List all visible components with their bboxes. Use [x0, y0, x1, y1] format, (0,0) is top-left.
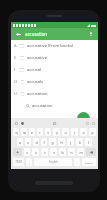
button[interactable]: A — [11, 40, 98, 52]
staticText: h — [60, 140, 63, 145]
staticText: t — [47, 130, 49, 135]
button[interactable]: Settings — [13, 120, 19, 126]
button[interactable]: u — [62, 128, 69, 136]
staticText: i — [74, 130, 75, 135]
button[interactable]: I — [11, 64, 98, 76]
button[interactable]: v — [50, 148, 57, 156]
button[interactable]: Add word — [77, 112, 90, 125]
staticText: s — [27, 140, 29, 145]
staticText: u — [64, 130, 67, 135]
button[interactable]: s — [25, 138, 31, 146]
button[interactable]: q — [13, 128, 19, 136]
button[interactable]: Backspace — [86, 148, 96, 156]
button[interactable]: . — [74, 158, 80, 166]
button[interactable]: Emoji — [51, 120, 57, 126]
staticText: n — [70, 150, 73, 155]
button[interactable]: Clipboard — [84, 120, 90, 126]
button[interactable]: r — [37, 128, 43, 136]
staticText: accusal — [27, 67, 42, 73]
staticText: b — [61, 150, 64, 155]
button[interactable]: Back — [13, 29, 23, 39]
button[interactable]: m — [77, 148, 84, 156]
staticText: m — [79, 150, 83, 155]
button[interactable]: More options — [90, 120, 96, 126]
button[interactable]: E — [11, 52, 98, 64]
button[interactable]: accusation — [24, 88, 98, 100]
staticText: w — [23, 130, 26, 135]
button[interactable]: Shift — [13, 148, 22, 156]
button[interactable]: , — [26, 158, 32, 166]
button[interactable]: t — [45, 128, 51, 136]
button[interactable]: Voice search — [86, 29, 96, 39]
staticText: y — [56, 130, 58, 135]
staticText: o — [82, 130, 85, 135]
staticText: a — [19, 140, 21, 145]
button[interactable]: accusation — [24, 100, 98, 112]
staticText: r — [39, 130, 41, 135]
button[interactable]: g — [49, 138, 56, 146]
staticText: accusative — [27, 55, 47, 61]
staticText: c — [44, 150, 46, 155]
button[interactable]: Stickers — [19, 120, 25, 126]
staticText: l — [88, 140, 89, 145]
staticText: accusation — [27, 91, 48, 97]
staticText: j — [70, 140, 71, 145]
button[interactable]: accusative (From books) — [24, 40, 98, 52]
staticText: . — [77, 160, 78, 165]
staticText: I — [14, 67, 16, 73]
button[interactable]: x — [32, 148, 39, 156]
staticText: g — [51, 140, 54, 145]
staticText: , — [29, 160, 30, 165]
staticText: U — [14, 91, 18, 97]
staticText: accusation — [32, 103, 53, 109]
button[interactable]: p — [89, 128, 96, 136]
staticText: z — [26, 150, 28, 155]
button[interactable]: ?123 — [13, 158, 24, 166]
staticText: O — [14, 79, 18, 85]
button[interactable]: O — [11, 76, 98, 88]
staticText: x — [35, 150, 37, 155]
button[interactable]: b — [59, 148, 66, 156]
button[interactable]: c — [41, 148, 48, 156]
button[interactable]: accusal — [24, 64, 98, 76]
button[interactable]: accusation — [25, 28, 86, 40]
staticText: English — [49, 160, 58, 164]
staticText: Search — [85, 161, 93, 164]
button[interactable]: z — [24, 148, 30, 156]
button[interactable]: y — [53, 128, 60, 136]
staticText: e — [31, 130, 33, 135]
button[interactable]: l — [85, 138, 92, 146]
button[interactable]: j — [67, 138, 74, 146]
button[interactable]: o — [80, 128, 87, 136]
staticText: E — [14, 55, 17, 61]
staticText: accusation — [25, 31, 48, 37]
button[interactable]: w — [21, 128, 27, 136]
staticText: q — [15, 130, 18, 135]
button[interactable]: k — [76, 138, 83, 146]
staticText: accusative (From books) — [27, 43, 74, 49]
button[interactable]: i — [71, 128, 78, 136]
button[interactable]: Search — [82, 158, 96, 166]
button[interactable]: accusative — [24, 52, 98, 64]
button[interactable]: a — [17, 138, 23, 146]
staticText: f — [43, 140, 45, 145]
button[interactable]: e — [29, 128, 35, 136]
button[interactable]: h — [58, 138, 65, 146]
button[interactable]: accusals — [24, 76, 98, 88]
button[interactable]: English — [34, 158, 72, 166]
staticText: A — [14, 43, 17, 49]
button[interactable]: U — [11, 88, 98, 100]
staticText: p — [91, 130, 94, 135]
staticText: v — [53, 150, 55, 155]
staticText: k — [79, 140, 81, 145]
button[interactable]: f — [41, 138, 47, 146]
staticText: accusals — [27, 79, 44, 85]
button[interactable]: d — [33, 138, 39, 146]
staticText: d — [35, 140, 38, 145]
staticText: ?123 — [15, 160, 22, 164]
button[interactable]: n — [68, 148, 75, 156]
